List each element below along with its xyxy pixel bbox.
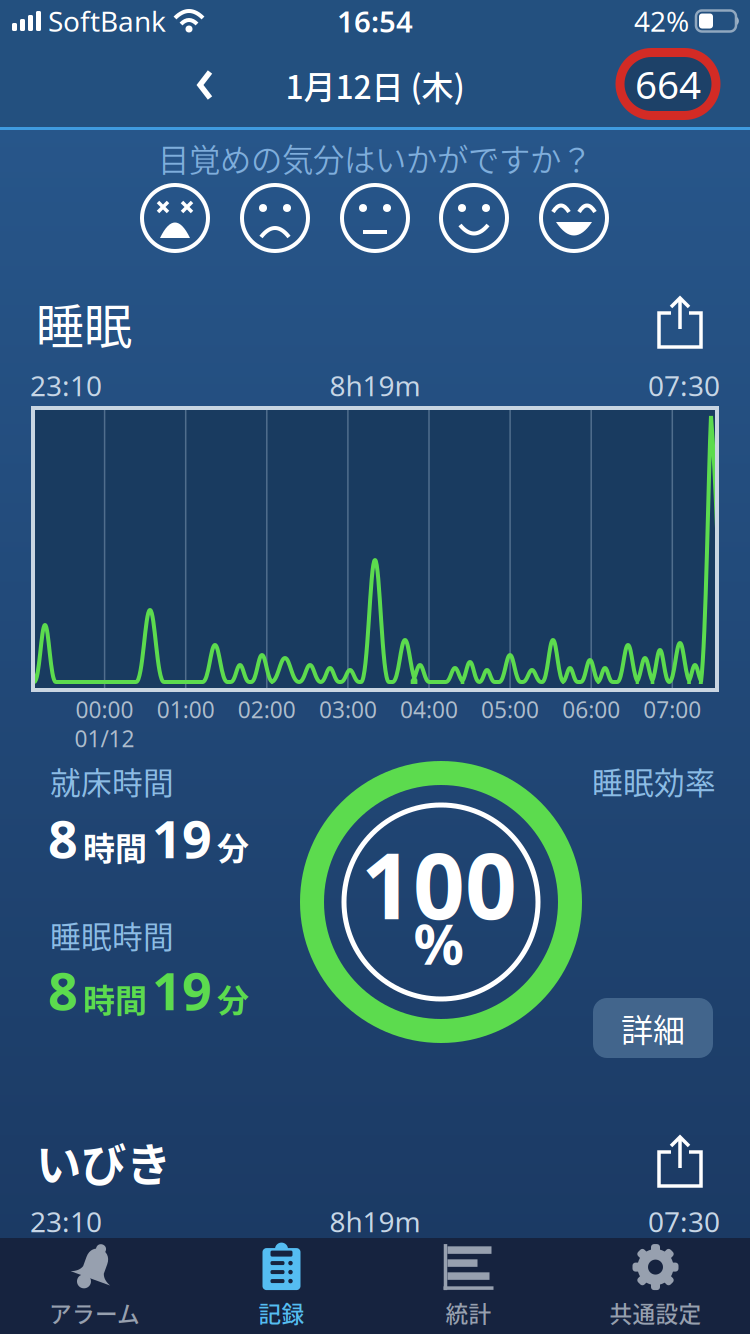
staticText: 01:00: [157, 694, 215, 724]
button[interactable]: 共有: [657, 297, 703, 349]
staticText: 07:30: [648, 367, 720, 404]
staticText: %: [413, 906, 464, 980]
staticText: 8: [48, 803, 78, 873]
button[interactable]: 詳細: [593, 998, 713, 1058]
button[interactable]: 最高: [541, 185, 607, 251]
button[interactable]: 統計: [375, 1238, 562, 1334]
staticText: 42%: [634, 2, 689, 40]
staticText: 統計: [445, 1296, 491, 1329]
staticText: 睡眠時間: [50, 913, 174, 957]
button[interactable]: 前の日: [187, 60, 223, 110]
button[interactable]: 664: [620, 52, 716, 115]
staticText: 23:10: [30, 1203, 102, 1240]
button[interactable]: 良い: [441, 185, 507, 251]
staticText: 分: [217, 975, 249, 1021]
staticText: 07:00: [643, 694, 701, 724]
staticText: 664: [635, 58, 701, 110]
staticText: 詳細: [621, 1005, 685, 1051]
staticText: 睡眠: [36, 288, 132, 358]
staticText: 就床時間: [50, 759, 174, 803]
button[interactable]: 記録: [188, 1238, 375, 1334]
staticText: 目覚めの気分はいかがですか？: [158, 135, 592, 181]
button[interactable]: 悪い: [242, 185, 308, 251]
button[interactable]: 共有: [657, 1136, 703, 1188]
staticText: 1月12日 (木): [285, 62, 464, 108]
button[interactable]: 共通設定: [562, 1238, 749, 1334]
staticText: 01/12: [75, 723, 135, 753]
staticText: 00:00: [76, 694, 134, 724]
staticText: いびき: [36, 1129, 171, 1195]
staticText: 8h19m: [329, 1203, 420, 1240]
button[interactable]: 普通: [342, 185, 408, 251]
staticText: 03:00: [319, 694, 377, 724]
staticText: 06:00: [562, 694, 620, 724]
staticText: 19: [152, 955, 212, 1025]
staticText: 04:00: [400, 694, 458, 724]
staticText: 19: [152, 803, 212, 873]
staticText: 16:54: [337, 1, 413, 40]
staticText: 100: [361, 824, 517, 944]
staticText: 05:00: [481, 694, 539, 724]
button[interactable]: アラーム: [1, 1238, 188, 1334]
staticText: 時間: [83, 975, 147, 1021]
staticText: アラーム: [49, 1296, 140, 1329]
staticText: 分: [217, 823, 249, 869]
staticText: SoftBank: [48, 2, 166, 40]
staticText: 02:00: [238, 694, 296, 724]
staticText: 8h19m: [329, 367, 420, 404]
button[interactable]: 最悪: [142, 185, 208, 251]
staticText: 記録: [258, 1296, 304, 1329]
staticText: 07:30: [648, 1203, 720, 1240]
staticText: 共通設定: [609, 1296, 701, 1329]
staticText: 睡眠効率: [592, 759, 716, 803]
staticText: 23:10: [30, 367, 102, 404]
staticText: 時間: [83, 823, 147, 869]
staticText: 8: [48, 955, 78, 1025]
